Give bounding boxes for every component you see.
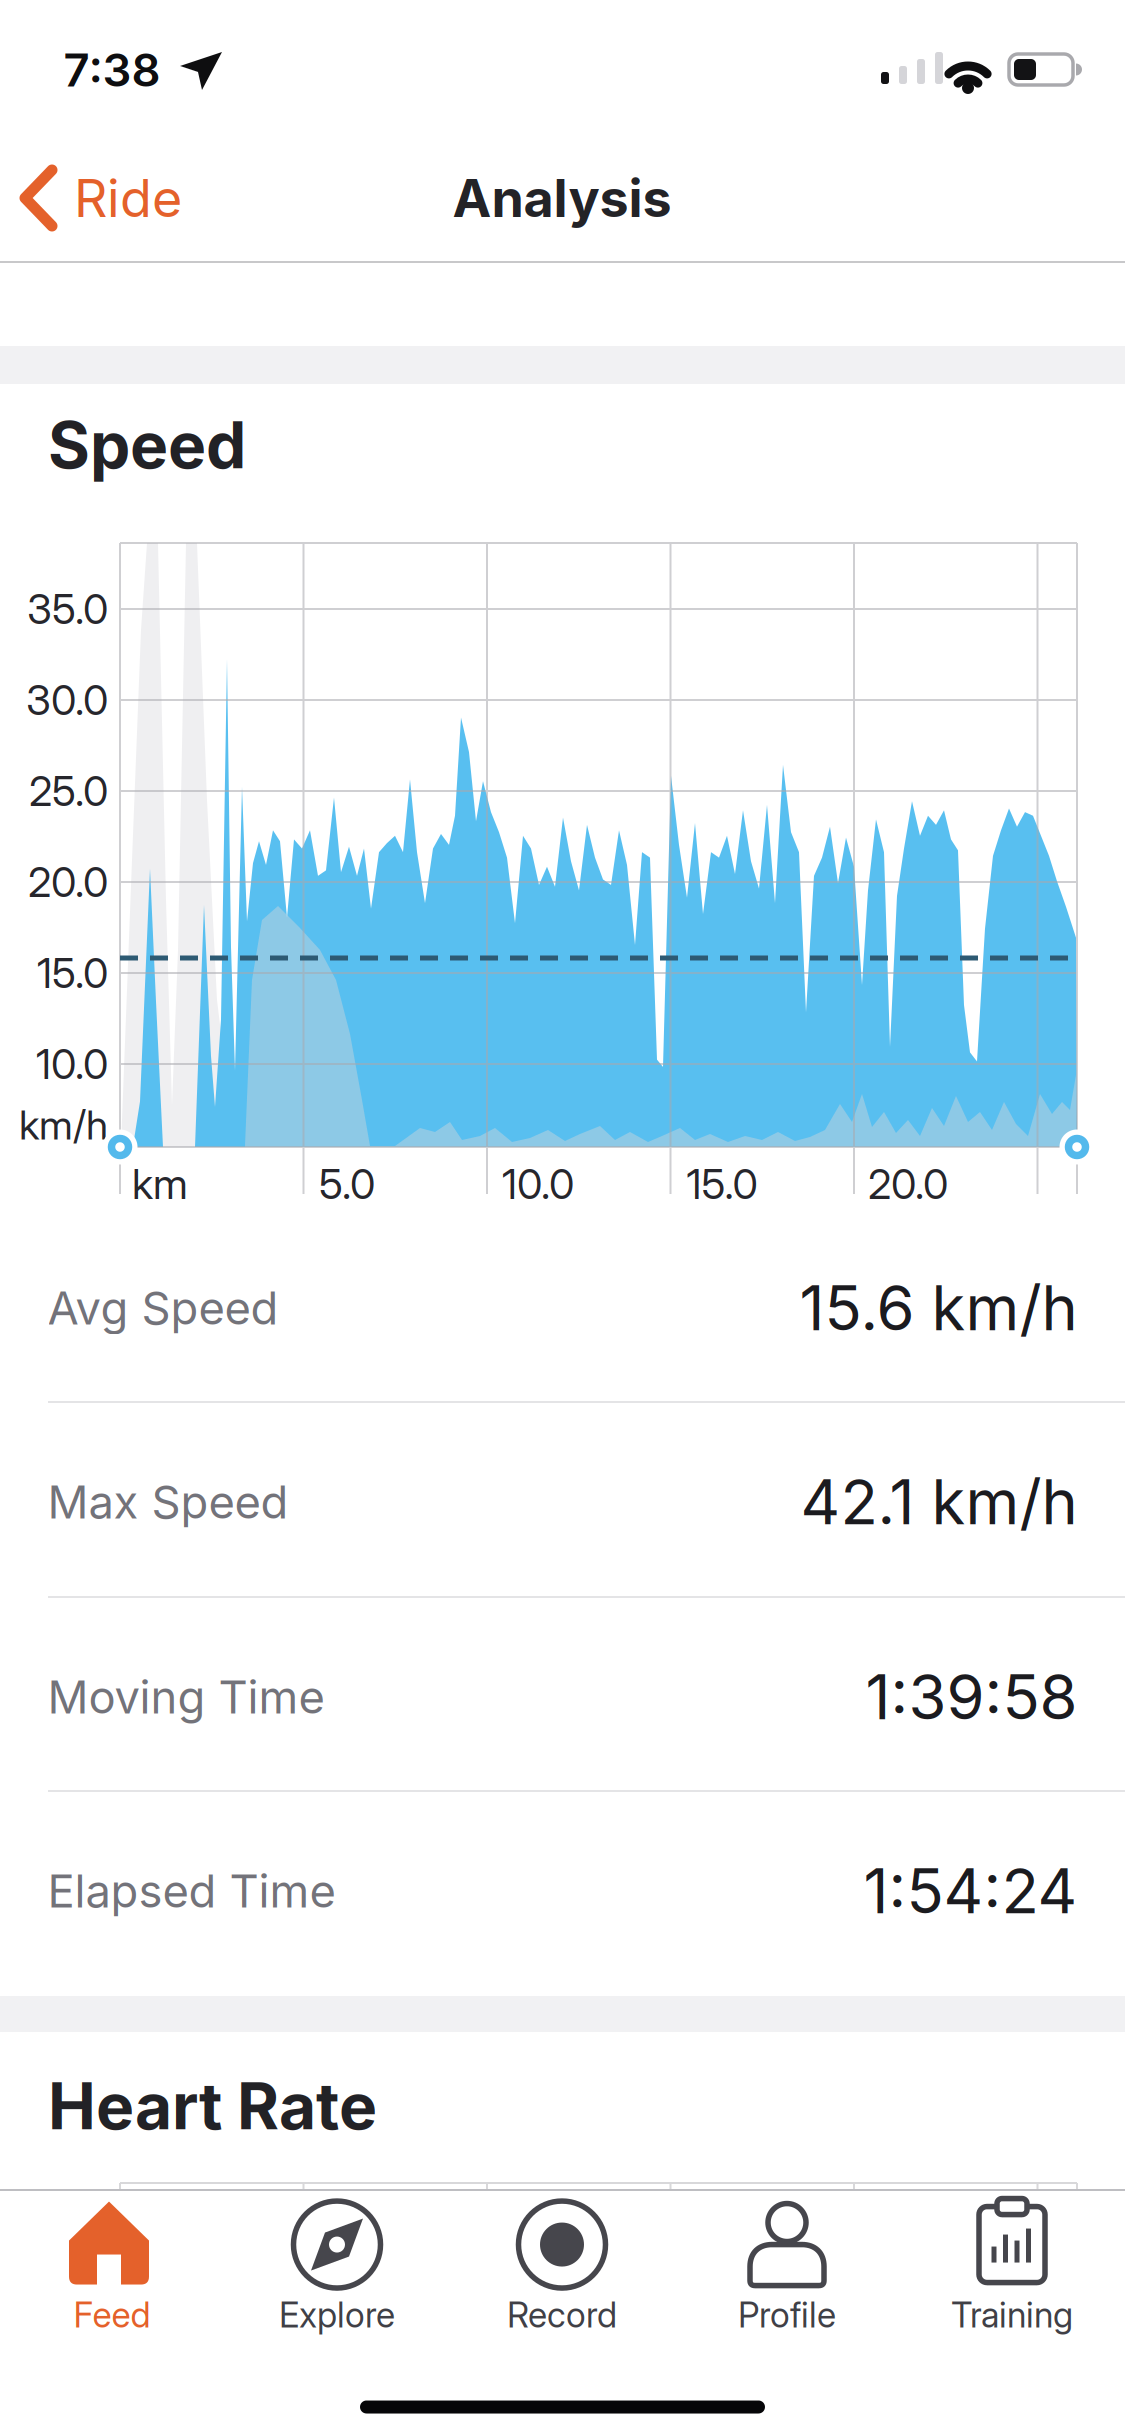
staticText: Analysis [452,167,671,229]
staticText: Record [507,2295,617,2335]
staticText: 42.1 km/h [800,1466,1077,1538]
staticText: Training [951,2295,1073,2335]
staticText: 35.0 [27,585,108,633]
button[interactable]: Back [20,166,182,230]
staticText: km/h [19,1101,108,1149]
button[interactable]: Range end [1059,1129,1094,1164]
staticText: 10.0 [502,1160,574,1208]
staticText: 30.0 [26,676,108,724]
staticText: 10.0 [36,1040,108,1088]
staticText: Max Speed [47,1475,288,1529]
button[interactable]: Training [907,2181,1117,2351]
staticText: 15.0 [37,949,108,997]
staticText: km [132,1160,188,1208]
button[interactable]: Range start [102,1129,137,1164]
staticText: 5.0 [319,1160,375,1208]
button[interactable]: Record [457,2181,667,2351]
staticText: Explore [279,2295,395,2335]
button[interactable]: Feed [7,2181,217,2351]
staticText: 20.0 [868,1160,948,1208]
staticText: 15.6 km/h [799,1272,1077,1344]
staticText: 1:54:24 [863,1855,1077,1927]
staticText: 20.0 [28,858,108,906]
staticText: Profile [738,2295,836,2335]
staticText: 15.0 [686,1160,757,1208]
staticText: 25.0 [29,767,108,815]
staticText: Moving Time [47,1670,324,1724]
staticText: Feed [73,2295,150,2335]
staticText: 1:39:58 [865,1661,1077,1733]
button[interactable]: Explore [232,2181,442,2351]
staticText: Avg Speed [47,1281,278,1335]
staticText: Speed [48,407,246,483]
staticText: Heart Rate [48,2068,377,2144]
staticText: Ride [74,167,182,229]
staticText: 7:38 [63,43,160,97]
button[interactable]: Profile [682,2181,892,2351]
staticText: Elapsed Time [47,1864,335,1918]
